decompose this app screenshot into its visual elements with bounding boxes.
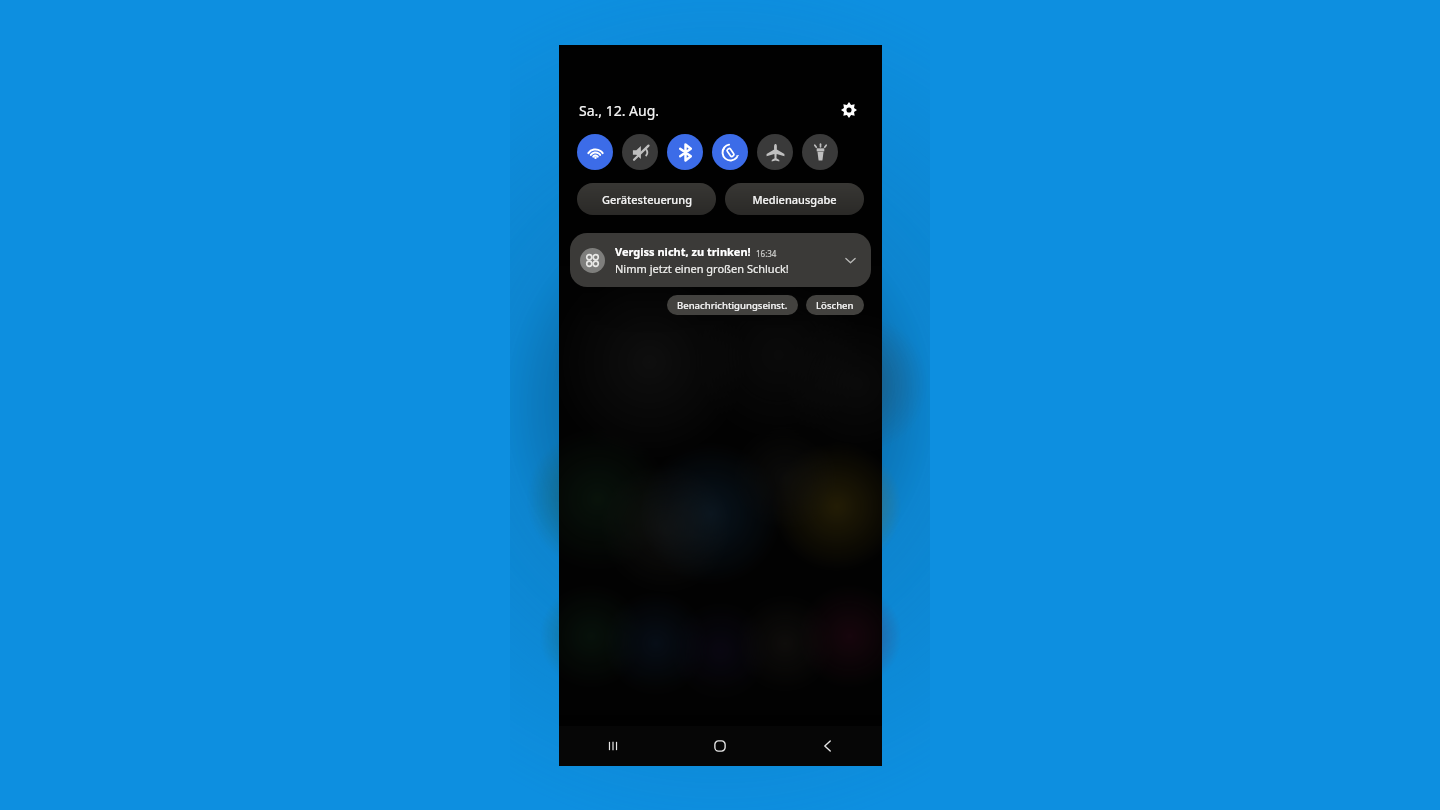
button[interactable]: Vergiss nicht, zu trinken!: [570, 233, 871, 287]
button[interactable]: Startbildschirm: [666, 726, 774, 766]
staticText: Gerätesteuerung: [602, 192, 692, 207]
staticText: Medienausgabe: [752, 192, 837, 207]
button[interactable]: Letzte Apps: [559, 726, 666, 766]
button[interactable]: WLAN: [577, 134, 613, 170]
staticText: Benachrichtigungseinst.: [677, 299, 788, 312]
button[interactable]: Gerätesteuerung: [577, 183, 716, 215]
staticText: Vergiss nicht, zu trinken!: [615, 244, 751, 259]
staticText: Nimm jetzt einen großen Schluck!: [615, 261, 789, 276]
button[interactable]: Taschenlampe: [802, 134, 838, 170]
button[interactable]: Erweitern: [839, 249, 861, 271]
button[interactable]: Benachrichtigungseinst.: [667, 295, 798, 315]
button[interactable]: Zurück: [774, 726, 882, 766]
button[interactable]: Bluetooth: [667, 134, 703, 170]
button[interactable]: Automatisch drehen: [712, 134, 748, 170]
staticText: Löschen: [816, 299, 854, 312]
button[interactable]: Einstellungen: [834, 95, 864, 125]
staticText: 16:34: [756, 248, 777, 259]
button[interactable]: Medienausgabe: [725, 183, 864, 215]
button[interactable]: Ton aus: [622, 134, 658, 170]
staticText: Sa., 12. Aug.: [579, 101, 660, 120]
button[interactable]: Flugmodus: [757, 134, 793, 170]
button[interactable]: Löschen: [806, 295, 864, 315]
